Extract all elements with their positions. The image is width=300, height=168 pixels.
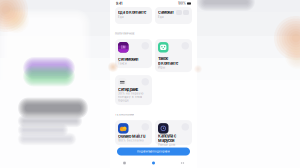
staticText: Еда — [158, 15, 164, 19]
button[interactable]: Капсула с Марусей — [155, 120, 192, 145]
button[interactable]: Установить — [181, 42, 189, 50]
button[interactable]: Такое ВКонтакте — [155, 39, 192, 72]
button[interactable]: Установить — [141, 78, 149, 86]
staticText: 9:41 — [116, 2, 122, 5]
button[interactable]: Профиль — [168, 158, 197, 168]
staticText: Самокат — [158, 10, 174, 15]
button[interactable]: Установить — [141, 123, 149, 131]
staticText: Поделиться подборкой — [137, 150, 170, 153]
staticText: 100% — [178, 2, 186, 5]
button[interactable]: Самокат — [155, 7, 192, 24]
staticText: Капсула с Марусей — [158, 134, 176, 143]
staticText: CM — [121, 45, 126, 49]
staticText: Еда ВКонтакте — [118, 10, 146, 15]
staticText: ПОПУЛЯРНОЕ — [115, 32, 135, 35]
staticText: Ситидрайв — [118, 87, 138, 92]
staticText: ТЕХНОЛОГИИ — [115, 113, 134, 116]
staticText: Ситимобил — [118, 57, 138, 62]
button[interactable]: Главная — [110, 158, 139, 168]
staticText: Облако Mail.ru — [118, 134, 145, 139]
staticText: Игры — [158, 66, 165, 69]
staticText: Умный дом — [158, 143, 175, 146]
staticText: 100% бесплатно — [118, 139, 144, 142]
button[interactable]: Облако Mail.ru — [115, 120, 152, 145]
button[interactable]: Поделиться подборкой — [117, 147, 190, 155]
button[interactable]: Поиск — [139, 158, 168, 168]
button[interactable]: CM — [115, 39, 152, 68]
staticText: Еда — [118, 15, 124, 19]
button[interactable]: Еда ВКонтакте — [115, 7, 152, 24]
button[interactable]: Ситидрайв — [115, 75, 152, 105]
staticText: Такое ВКонтакте — [158, 56, 178, 66]
button[interactable]: Установить — [141, 42, 149, 50]
staticText: Такси — [118, 62, 127, 65]
button[interactable]: Установить — [181, 123, 189, 131]
staticText: 30% на первую поездку в этом городе — [118, 92, 143, 102]
